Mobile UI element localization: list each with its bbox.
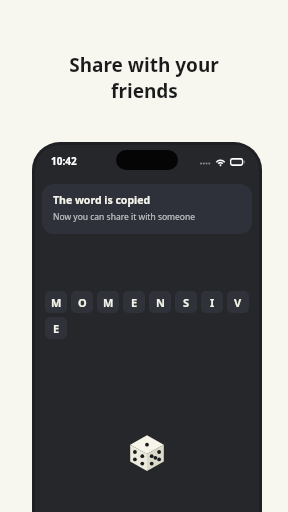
button[interactable]: M [45,291,67,313]
button[interactable]: S [175,291,197,313]
staticText: O [78,295,87,310]
staticText: V [234,295,242,310]
staticText: The word is copied [53,193,151,207]
button[interactable]: N [149,291,171,313]
button[interactable]: E [123,291,145,313]
staticText: M [51,295,62,310]
button[interactable]: M [97,291,119,313]
button[interactable]: V [227,291,249,313]
staticText: Now you can share it with someone [53,211,196,223]
staticText: I [210,295,215,310]
staticText: M [103,295,114,310]
staticText: E [53,321,60,336]
button[interactable]: Shuffle word [124,429,170,475]
button[interactable]: E [45,317,67,339]
staticText: Share with your [69,52,219,78]
staticText: S [183,295,190,310]
button[interactable]: I [201,291,223,313]
staticText: friends [111,78,178,104]
button[interactable]: The word is copied [42,184,252,234]
staticText: 10:42 [51,154,77,168]
staticText: E [131,295,138,310]
staticText: N [156,295,165,310]
button[interactable]: O [71,291,93,313]
